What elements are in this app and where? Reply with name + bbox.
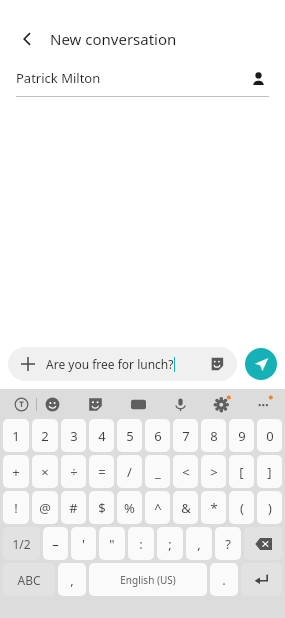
staticText: _ <box>155 463 161 481</box>
button[interactable]: & <box>173 491 198 524</box>
staticText: ! <box>14 499 18 517</box>
button[interactable]: Back <box>14 26 40 52</box>
staticText: , <box>197 535 201 553</box>
button[interactable]: _ <box>145 455 170 488</box>
staticText: Patrick Milton <box>16 69 101 87</box>
button[interactable]: , <box>186 527 212 560</box>
button[interactable]: Attach <box>8 347 237 381</box>
staticText: @ <box>39 499 51 517</box>
button[interactable]: Enter <box>241 563 282 596</box>
staticText: [ <box>239 463 244 481</box>
button[interactable]: [ <box>229 455 254 488</box>
button[interactable]: Sticker <box>207 354 227 374</box>
button[interactable]: Stickers <box>84 393 106 415</box>
button[interactable]: 7 <box>173 419 198 452</box>
staticText: ' <box>82 535 85 553</box>
staticText: 9 <box>238 427 246 445</box>
staticText: ] <box>267 463 272 481</box>
button[interactable]: " <box>99 527 125 560</box>
staticText: English (US) <box>120 573 176 587</box>
button[interactable]: + <box>3 455 29 488</box>
staticText: 1 <box>12 427 20 445</box>
button[interactable]: Patrick Milton <box>16 60 269 96</box>
other: Contacts <box>247 67 269 89</box>
staticText: ( <box>240 499 244 517</box>
button[interactable]: = <box>89 455 114 488</box>
button[interactable]: < <box>173 455 198 488</box>
staticText: – <box>52 535 59 553</box>
staticText: = <box>98 463 106 481</box>
staticText: 3 <box>70 427 78 445</box>
button[interactable]: ? <box>215 527 241 560</box>
staticText: * <box>210 499 218 517</box>
button[interactable]: ! <box>3 491 29 524</box>
staticText: 4 <box>98 427 106 445</box>
staticText: × <box>41 463 49 481</box>
button[interactable]: Settings <box>211 393 233 415</box>
staticText: New conversation <box>50 29 177 49</box>
button[interactable]: 8 <box>201 419 226 452</box>
button[interactable]: Translate <box>10 393 32 415</box>
button[interactable]: Voice input <box>169 393 191 415</box>
staticText: ÷ <box>70 463 78 481</box>
staticText: $ <box>98 499 106 517</box>
button[interactable]: > <box>201 455 226 488</box>
button[interactable]: 5 <box>117 419 142 452</box>
staticText: ; <box>168 535 172 553</box>
staticText: < <box>182 463 190 481</box>
button[interactable]: ; <box>157 527 183 560</box>
staticText: . <box>222 571 226 589</box>
button[interactable]: Backspace <box>244 527 282 560</box>
button[interactable]: 0 <box>257 419 282 452</box>
button[interactable]: More options <box>253 393 275 415</box>
staticText: 8 <box>210 427 218 445</box>
button[interactable]: ABC <box>3 563 55 596</box>
button[interactable]: 2 <box>32 419 58 452</box>
staticText: , <box>70 571 74 589</box>
button[interactable]: 4 <box>89 419 114 452</box>
button[interactable]: 9 <box>229 419 254 452</box>
staticText: : <box>139 535 143 553</box>
staticText: > <box>210 463 218 481</box>
button[interactable]: % <box>117 491 142 524</box>
button[interactable]: 1 <box>3 419 29 452</box>
staticText: 2 <box>41 427 49 445</box>
button[interactable]: : <box>128 527 154 560</box>
button[interactable]: 3 <box>61 419 86 452</box>
button[interactable]: / <box>117 455 142 488</box>
button[interactable]: ] <box>257 455 282 488</box>
button[interactable]: 6 <box>145 419 170 452</box>
staticText: ^ <box>154 499 162 517</box>
button[interactable]: @ <box>32 491 58 524</box>
staticText: / <box>127 463 132 481</box>
staticText: 6 <box>154 427 162 445</box>
staticText: % <box>124 499 135 517</box>
button[interactable]: ^ <box>145 491 170 524</box>
staticText: 1/2 <box>12 536 31 552</box>
staticText: " <box>109 535 115 553</box>
button[interactable]: ' <box>71 527 96 560</box>
staticText: + <box>12 463 20 481</box>
button[interactable]: ( <box>229 491 254 524</box>
staticText: & <box>181 499 191 517</box>
staticText: 7 <box>182 427 190 445</box>
button[interactable]: $ <box>89 491 114 524</box>
button[interactable]: , <box>58 563 86 596</box>
button[interactable]: GIF <box>127 393 149 415</box>
staticText: # <box>69 499 78 517</box>
button[interactable]: ÷ <box>61 455 86 488</box>
button[interactable]: . <box>210 563 238 596</box>
other: Attach <box>18 354 38 374</box>
button[interactable]: English (US) <box>89 563 207 596</box>
button[interactable]: Send <box>245 348 277 380</box>
button[interactable]: ) <box>257 491 282 524</box>
staticText: ) <box>268 499 272 517</box>
button[interactable]: * <box>201 491 226 524</box>
button[interactable]: Emoji <box>41 393 63 415</box>
button[interactable]: 1/2 <box>3 527 40 560</box>
button[interactable]: × <box>32 455 58 488</box>
staticText: 0 <box>266 427 274 445</box>
staticText: ? <box>225 535 231 553</box>
button[interactable]: # <box>61 491 86 524</box>
button[interactable]: – <box>43 527 68 560</box>
